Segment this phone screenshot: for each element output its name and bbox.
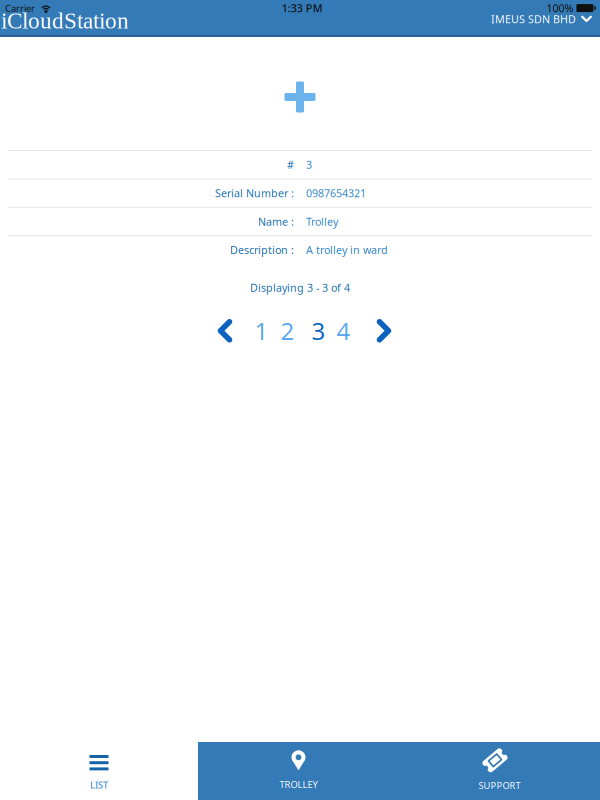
staticText: 4 — [336, 315, 350, 347]
button[interactable]: SUPPORT — [399, 742, 600, 800]
staticText: Carrier — [5, 2, 35, 14]
button[interactable]: Next page — [368, 316, 399, 346]
button[interactable]: TROLLEY — [198, 742, 399, 800]
staticText: IMEUS SDN BHD — [491, 12, 576, 26]
staticText: TROLLEY — [279, 778, 317, 791]
button[interactable]: Add — [283, 80, 317, 114]
staticText: Description : — [230, 243, 294, 257]
staticText: 2 — [280, 315, 294, 347]
staticText: 1 — [254, 315, 268, 347]
staticText: Displaying 3 - 3 of 4 — [250, 281, 350, 295]
staticText: 3 — [311, 315, 325, 347]
staticText: 1:33 PM — [282, 1, 323, 15]
staticText: 100% — [546, 1, 573, 15]
staticText: SUPPORT — [478, 779, 520, 792]
staticText: 0987654321 — [306, 186, 366, 200]
staticText: # — [287, 158, 294, 172]
staticText: Name : — [258, 214, 294, 229]
staticText: LIST — [90, 779, 108, 791]
button[interactable]: 1 — [250, 316, 272, 346]
staticText: iCloudStation — [1, 8, 129, 33]
button[interactable]: Previous page — [209, 316, 240, 346]
button[interactable]: IMEUS SDN BHD — [481, 8, 594, 30]
staticText: Serial Number : — [215, 186, 294, 200]
staticText: Trolley — [306, 214, 338, 229]
staticText: A trolley in ward — [306, 243, 388, 257]
button[interactable]: 4 — [332, 316, 354, 346]
staticText: 3 — [306, 158, 312, 172]
button[interactable]: 2 — [276, 316, 298, 346]
button[interactable]: LIST — [0, 742, 198, 800]
button[interactable]: 3 — [307, 316, 329, 346]
